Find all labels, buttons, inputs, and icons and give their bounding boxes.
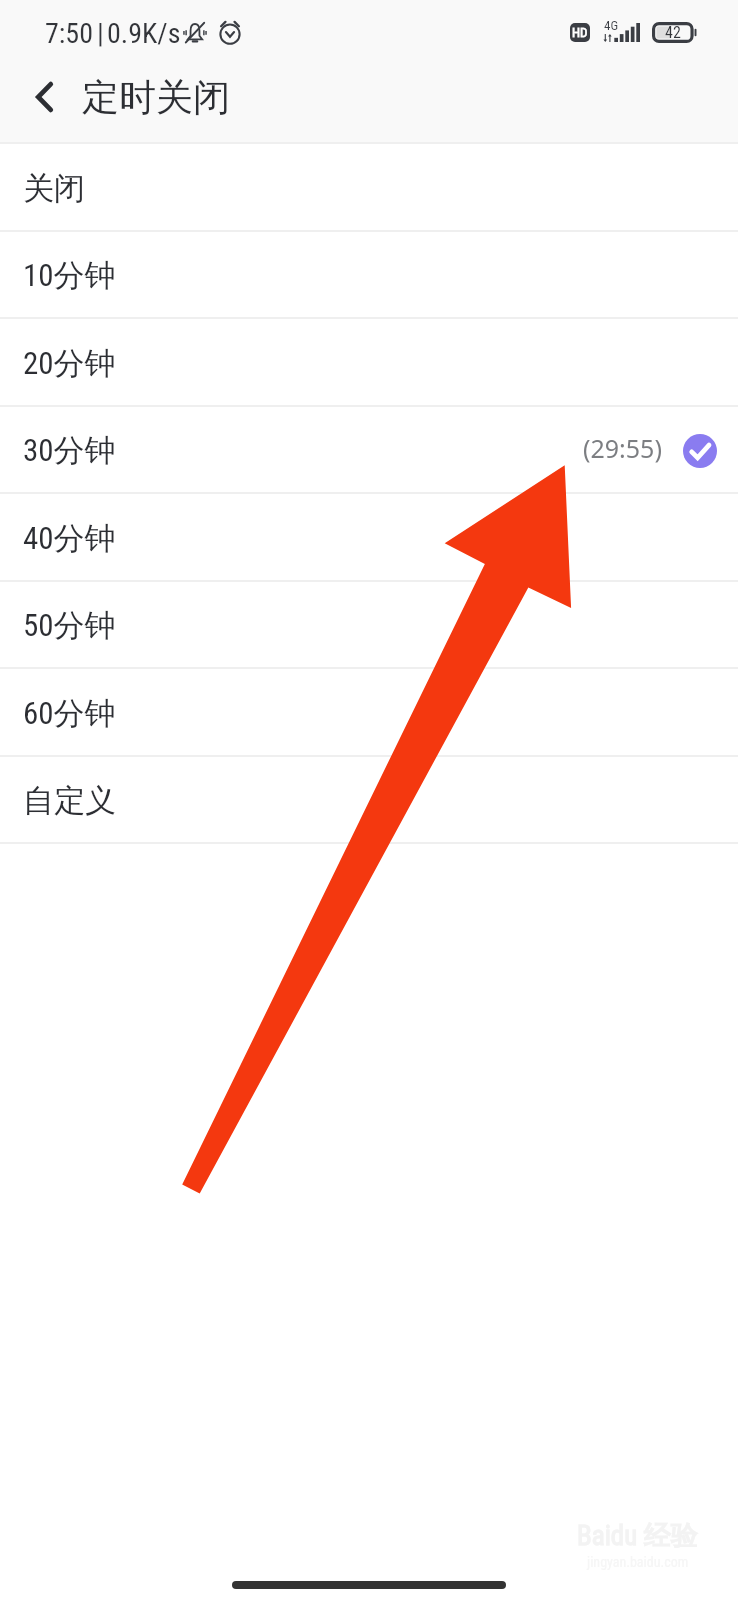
staticText: 20分钟 — [23, 344, 116, 383]
staticText: 7:50 — [45, 17, 94, 50]
button[interactable]: 10分钟 — [0, 232, 738, 319]
button[interactable]: 30分钟 — [0, 407, 738, 494]
staticText: 0.9K/s — [107, 17, 181, 50]
staticText: | — [97, 17, 104, 50]
staticText: 60分钟 — [23, 694, 116, 733]
staticText: 40分钟 — [23, 519, 116, 558]
staticText: HD — [572, 25, 588, 40]
staticText: 50分钟 — [23, 606, 116, 645]
staticText: jingyan.baidu.com — [587, 1554, 689, 1570]
staticText: 30分钟 — [23, 431, 116, 470]
button[interactable]: 自定义 — [0, 757, 738, 844]
staticText: 4G — [604, 18, 619, 33]
button[interactable]: 关闭 — [0, 144, 738, 232]
staticText: 定时关闭 — [82, 74, 230, 121]
staticText: 关闭 — [23, 169, 85, 208]
staticText: Baidu 经验 — [577, 1519, 698, 1553]
button[interactable]: 60分钟 — [0, 669, 738, 757]
button[interactable]: 20分钟 — [0, 319, 738, 407]
staticText: 自定义 — [23, 781, 116, 820]
button[interactable]: 40分钟 — [0, 494, 738, 582]
button[interactable]: Back — [0, 56, 76, 138]
staticText: 10分钟 — [23, 256, 116, 295]
staticText: 42 — [665, 23, 681, 42]
staticText: (29:55) — [583, 431, 662, 465]
button[interactable]: 50分钟 — [0, 582, 738, 669]
